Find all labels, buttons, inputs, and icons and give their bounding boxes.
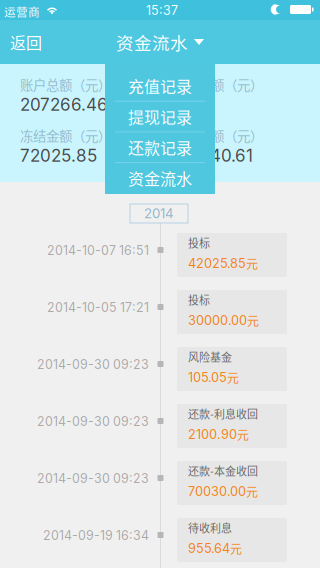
staticText: 还款-本金收回: [188, 463, 258, 479]
staticText: 2014-09-30 09:23: [37, 357, 149, 372]
staticText: 资金流水: [116, 29, 188, 55]
staticText: 2014-09-19 16:34: [43, 528, 149, 543]
staticText: 元: [230, 540, 242, 557]
staticText: 2014: [144, 205, 174, 222]
button[interactable]: 投标: [177, 290, 287, 334]
staticText: 70030.00: [188, 484, 246, 499]
staticText: 提现记录: [128, 105, 192, 128]
staticText: 可用余额（元）: [172, 75, 263, 94]
button[interactable]: 待收利息: [177, 518, 287, 562]
staticText: 冻结金额（元）: [20, 126, 111, 145]
button[interactable]: 返回: [0, 20, 52, 64]
staticText: 2014-10-05 17:21: [47, 300, 149, 315]
staticText: 105.05: [188, 370, 227, 385]
staticText: 还款-利息收回: [188, 406, 258, 422]
button[interactable]: 风险基金: [177, 347, 287, 391]
staticText: 投标: [188, 235, 210, 251]
button[interactable]: 还款记录: [105, 132, 215, 162]
button[interactable]: 资金流水: [111, 20, 209, 64]
button[interactable]: 2014: [130, 204, 188, 223]
staticText: 2014-09-30 09:23: [37, 471, 149, 486]
staticText: 42025.85: [188, 256, 246, 271]
staticText: 30000.00: [188, 313, 247, 328]
staticText: 风险基金: [188, 349, 232, 365]
staticText: 返回: [10, 30, 42, 54]
button[interactable]: 还款-利息收回: [177, 404, 287, 448]
button[interactable]: 还款-本金收回: [177, 461, 287, 505]
staticText: 2014-10-07 16:51: [47, 243, 149, 258]
staticText: 15:37: [146, 3, 178, 18]
staticText: 待收金额（元）: [172, 126, 263, 145]
staticText: 元: [227, 369, 239, 386]
staticText: 0.00: [172, 94, 208, 115]
staticText: 待收利息: [188, 520, 232, 536]
staticText: 资金流水: [128, 166, 192, 190]
button[interactable]: 充值记录: [105, 71, 215, 101]
staticText: 运营商: [4, 3, 40, 20]
staticText: 投标: [188, 292, 210, 308]
staticText: 元: [246, 483, 258, 500]
staticText: 72025.85: [20, 145, 97, 166]
staticText: 955.64: [188, 541, 230, 556]
staticText: 元: [247, 312, 259, 329]
button[interactable]: 投标: [177, 233, 287, 277]
button[interactable]: 提现记录: [105, 102, 215, 131]
staticText: 2014-09-30 09:23: [37, 414, 149, 429]
staticText: 元: [246, 255, 258, 272]
staticText: 元: [237, 426, 249, 443]
staticText: 2100.90: [188, 427, 237, 442]
staticText: 充值记录: [128, 74, 192, 97]
staticText: 135240.61: [172, 145, 253, 166]
staticText: 账户总额（元）: [20, 75, 111, 94]
staticText: 还款记录: [128, 136, 192, 159]
staticText: 207266.46: [20, 94, 108, 115]
button[interactable]: 资金流水: [105, 163, 215, 193]
